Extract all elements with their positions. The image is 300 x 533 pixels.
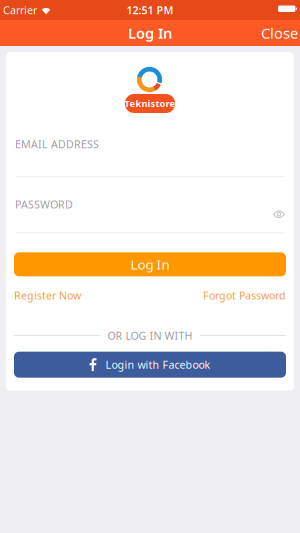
- staticText: Close: [261, 23, 298, 43]
- button[interactable]: Login with Facebook: [14, 352, 286, 378]
- staticText: OR LOG IN WITH: [107, 328, 192, 343]
- staticText: Register Now: [14, 288, 81, 302]
- staticText: EMAIL ADDRESS: [15, 137, 99, 151]
- staticText: Log In: [128, 23, 172, 43]
- staticText: Login with Facebook: [105, 358, 210, 372]
- button[interactable]: Close: [261, 23, 300, 43]
- button[interactable]: Register Now: [14, 288, 81, 302]
- staticText: Forgot Password: [203, 288, 286, 302]
- button[interactable]: Log In: [14, 252, 286, 276]
- staticText: Carrier: [3, 3, 37, 17]
- staticText: 12:51 PM: [126, 3, 173, 17]
- staticText: PASSWORD: [15, 197, 73, 211]
- staticText: Teknistore: [124, 97, 175, 110]
- staticText: Log In: [130, 255, 169, 273]
- button[interactable]: Forgot Password: [203, 288, 286, 302]
